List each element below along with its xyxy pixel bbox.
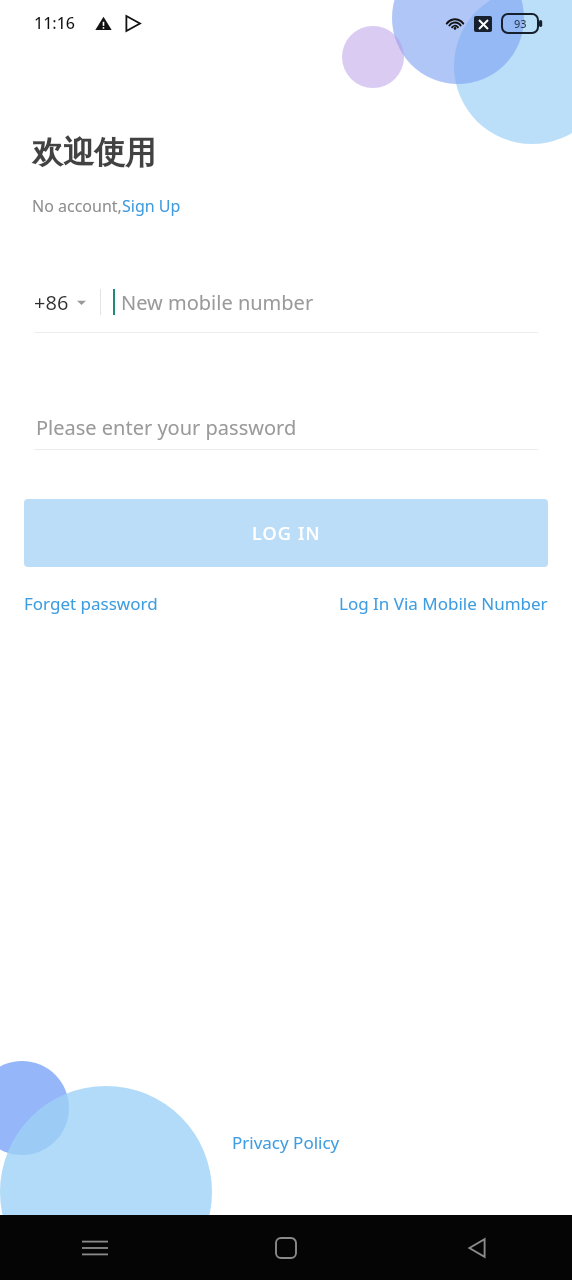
staticText: New mobile number xyxy=(121,289,314,316)
staticText: Log In Via Mobile Number xyxy=(339,592,548,615)
button[interactable]: New mobile number xyxy=(121,289,538,316)
staticText: LOG IN xyxy=(252,521,321,546)
button[interactable]: Home xyxy=(190,1215,381,1280)
staticText: 93 xyxy=(514,16,527,31)
staticText: 欢迎使用 xyxy=(32,133,156,172)
staticText: Privacy Policy xyxy=(232,1131,340,1154)
staticText: +86 xyxy=(34,289,69,316)
button[interactable]: Log In Via Mobile Number xyxy=(339,592,548,615)
staticText: 11:16 xyxy=(34,12,75,34)
button[interactable]: Back xyxy=(381,1215,572,1280)
staticText: Sign Up xyxy=(122,195,181,217)
button[interactable]: +86 xyxy=(34,289,86,316)
button[interactable]: Recent apps xyxy=(0,1215,190,1280)
button[interactable]: Please enter your password xyxy=(36,410,536,444)
staticText: Forget password xyxy=(24,592,158,615)
staticText: Please enter your password xyxy=(36,414,297,441)
button[interactable]: Forget password xyxy=(24,592,158,615)
button[interactable]: LOG IN xyxy=(24,499,548,567)
button[interactable]: Sign Up xyxy=(122,195,181,217)
staticText: No account, xyxy=(32,195,122,217)
button[interactable]: Privacy Policy xyxy=(232,1131,340,1154)
